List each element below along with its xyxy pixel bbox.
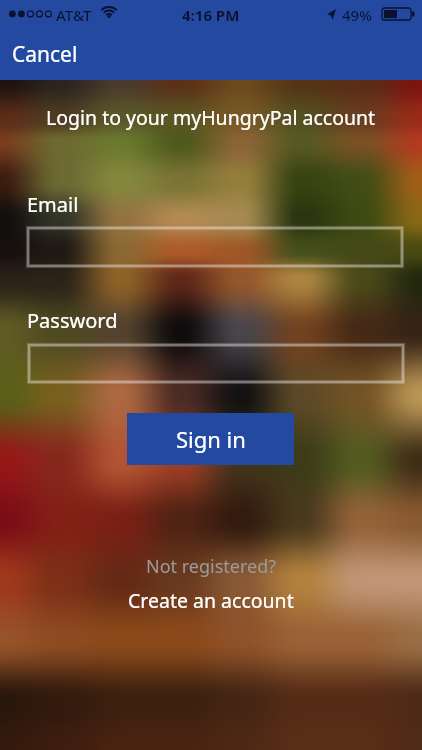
staticText: Password: [27, 307, 118, 334]
staticText: Not registered?: [146, 554, 277, 579]
button[interactable]: Create an account: [120, 585, 302, 616]
staticText: Login to your myHungryPal account: [46, 104, 376, 131]
staticText: Email: [27, 191, 79, 218]
button[interactable]: Password field: [28, 344, 404, 383]
staticText: Create an account: [128, 587, 294, 614]
staticText: 49%: [342, 5, 372, 25]
staticText: 4:16 PM: [182, 5, 240, 25]
staticText: AT&T: [56, 5, 92, 25]
staticText: Sign in: [176, 424, 246, 454]
button[interactable]: Cancel: [4, 36, 86, 73]
staticText: Cancel: [12, 40, 78, 69]
button[interactable]: Sign in: [127, 413, 294, 465]
button[interactable]: Email field: [27, 227, 403, 267]
